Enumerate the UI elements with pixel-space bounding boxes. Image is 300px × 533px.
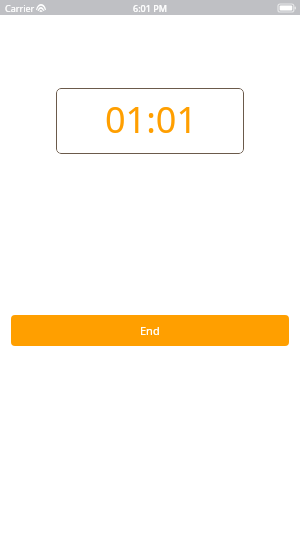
staticText: 6:01 PM bbox=[133, 2, 167, 14]
button[interactable]: End bbox=[11, 315, 289, 346]
other: Battery bbox=[278, 4, 296, 12]
staticText: Carrier bbox=[5, 2, 35, 14]
staticText: End bbox=[140, 323, 160, 338]
other: Wifi bbox=[36, 4, 46, 12]
staticText: 01:01 bbox=[105, 95, 198, 144]
